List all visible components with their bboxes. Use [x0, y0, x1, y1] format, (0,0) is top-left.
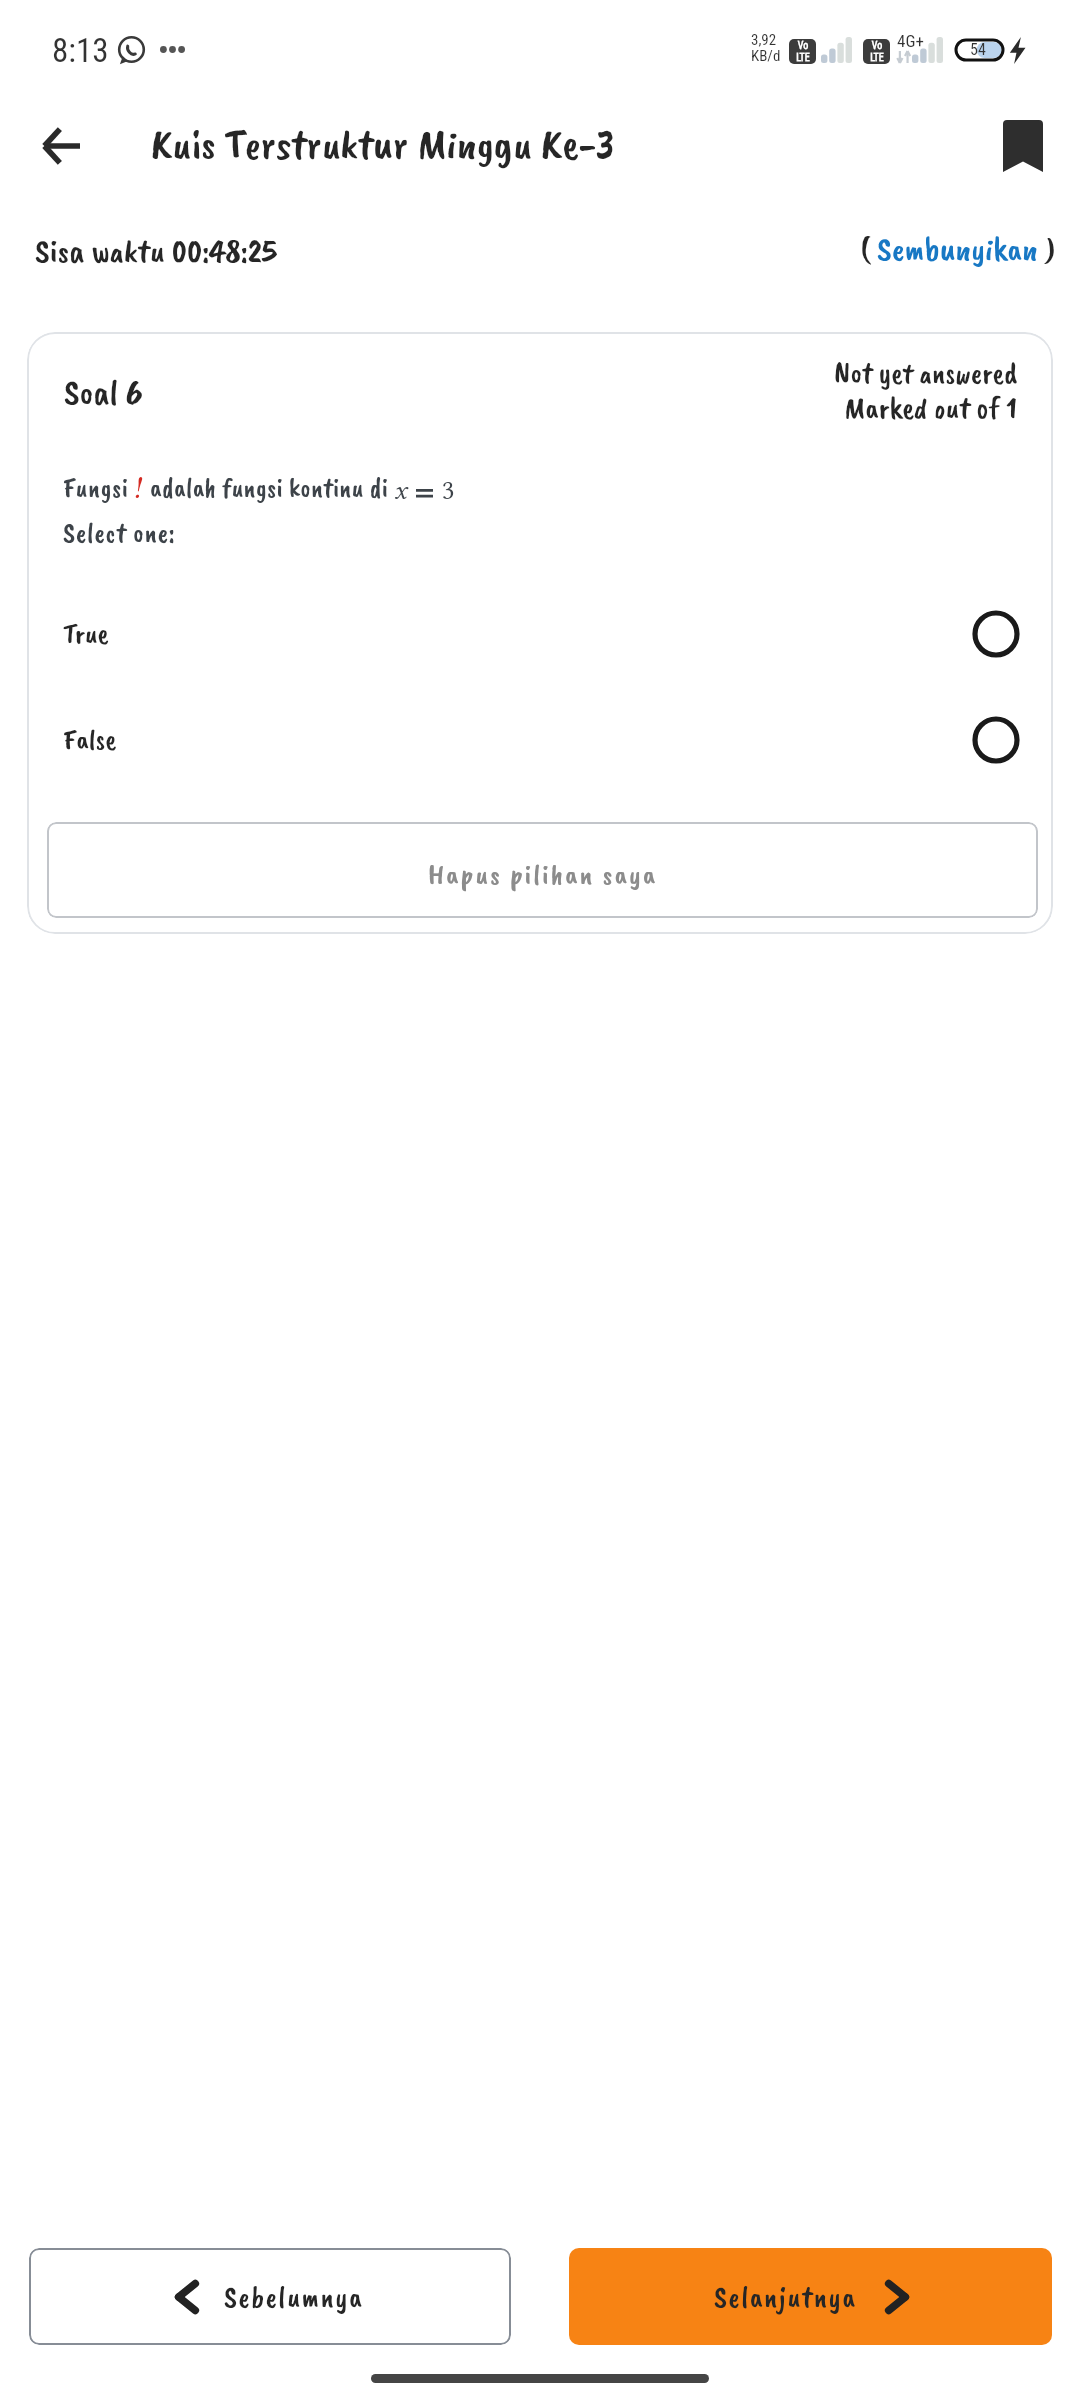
- button[interactable]: False: [27, 710, 1053, 780]
- staticText: Not yet answered: [834, 354, 1017, 392]
- staticText: 3,92 KB/d: [751, 31, 781, 65]
- staticText: Vo LTE: [796, 40, 810, 63]
- button[interactable]: True: [27, 604, 1053, 674]
- staticText: !: [133, 470, 141, 505]
- staticText: adalah fungsi kontinu di: [150, 471, 389, 505]
- staticText: Sebelumnya: [224, 2278, 364, 2316]
- staticText: 4G+: [897, 31, 924, 51]
- button[interactable]: Back: [27, 112, 95, 180]
- button[interactable]: Bookmark: [989, 112, 1057, 180]
- staticText: Kuis Terstruktur Minggu Ke-3: [151, 117, 615, 171]
- button[interactable]: Sebelumnya: [29, 2248, 511, 2345]
- staticText: True: [63, 615, 109, 652]
- staticText: Marked out of 1: [844, 388, 1017, 427]
- staticText: False: [63, 721, 117, 758]
- staticText: Hapus pilihan saya: [428, 856, 658, 893]
- staticText: Sisa waktu 00:48:25: [35, 229, 277, 272]
- staticText: Fungsi: [63, 471, 129, 505]
- staticText: Select one:: [63, 515, 176, 550]
- staticText: Vo LTE: [870, 40, 884, 63]
- staticText: Soal 6: [64, 369, 143, 414]
- staticText: x: [394, 475, 407, 506]
- staticText: 3: [442, 475, 455, 506]
- staticText: (: [860, 227, 877, 270]
- staticText: Sembunyikan: [877, 227, 1038, 270]
- button[interactable]: Hapus pilihan saya: [47, 822, 1038, 918]
- staticText: 8:13: [52, 31, 109, 70]
- button[interactable]: (: [860, 227, 1056, 270]
- staticText: ): [1038, 227, 1056, 270]
- staticText: 54: [970, 40, 986, 59]
- staticText: Selanjutnya: [714, 2278, 857, 2316]
- button[interactable]: Selanjutnya: [569, 2248, 1052, 2345]
